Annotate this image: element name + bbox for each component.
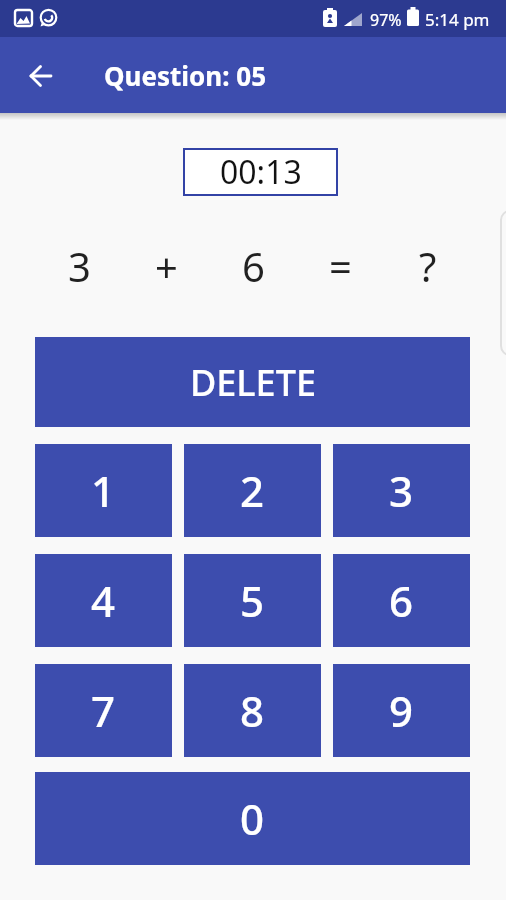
button[interactable]: 3	[333, 444, 470, 537]
staticText: 1	[91, 462, 116, 519]
staticText: =	[329, 239, 352, 293]
staticText: 9	[389, 682, 414, 739]
button[interactable]: 1	[35, 444, 172, 537]
staticText: 2	[240, 462, 265, 519]
staticText: 3	[68, 239, 91, 293]
staticText: 5:14 pm	[425, 8, 490, 31]
button[interactable]: 4	[35, 554, 172, 647]
button[interactable]	[24, 59, 58, 93]
button[interactable]: 0	[35, 772, 470, 865]
staticText: 5	[240, 572, 265, 629]
staticText: 00:13	[220, 150, 302, 194]
staticText: 6	[242, 239, 265, 293]
button[interactable]: 6	[333, 554, 470, 647]
button[interactable]: 7	[35, 664, 172, 757]
staticText: 7	[91, 682, 116, 739]
staticText: ?	[419, 239, 437, 293]
staticText: DELETE	[190, 358, 316, 407]
staticText: 4	[91, 572, 116, 629]
staticText: 0	[240, 790, 265, 847]
staticText: +	[155, 239, 178, 293]
staticText: Question: 05	[104, 58, 267, 93]
staticText: 6	[389, 572, 414, 629]
staticText: 97%	[370, 9, 402, 31]
staticText: 3	[389, 462, 414, 519]
staticText: 8	[240, 682, 265, 739]
button[interactable]: 5	[184, 554, 321, 647]
button[interactable]: DELETE	[35, 337, 470, 427]
button[interactable]: 9	[333, 664, 470, 757]
button[interactable]: 8	[184, 664, 321, 757]
button[interactable]: 2	[184, 444, 321, 537]
